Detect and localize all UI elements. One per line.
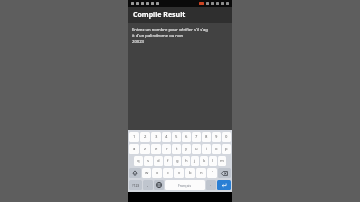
button[interactable]: p <box>222 144 231 154</box>
staticText: c <box>167 170 170 176</box>
staticText: 6 <box>185 134 188 140</box>
button[interactable]: t <box>172 144 181 154</box>
staticText: q <box>137 158 140 164</box>
staticText: o <box>215 146 218 152</box>
button[interactable]: e <box>151 144 161 154</box>
button[interactable]: 6 <box>182 132 191 142</box>
button[interactable]: Enter <box>217 180 231 190</box>
staticText: g <box>176 158 179 164</box>
button[interactable]: a <box>129 144 139 154</box>
staticText: s <box>147 158 150 164</box>
staticText: 0 <box>225 134 228 140</box>
staticText: h <box>185 158 188 164</box>
staticText: 8 <box>205 134 208 140</box>
button[interactable]: Shift <box>129 168 141 178</box>
button[interactable]: ' <box>207 168 217 178</box>
staticText: u <box>195 146 198 152</box>
staticText: Français <box>178 183 192 188</box>
staticText: x <box>156 170 159 176</box>
staticText: 4 <box>165 134 168 140</box>
button[interactable]: d <box>154 156 163 166</box>
staticText: t <box>176 146 178 152</box>
button[interactable]: Change keyboard <box>154 180 164 190</box>
button[interactable]: 1 <box>129 132 139 142</box>
button[interactable]: Backspace <box>218 168 231 178</box>
button[interactable]: 4 <box>162 132 171 142</box>
staticText: m <box>220 158 224 164</box>
staticText: , <box>147 182 149 188</box>
button[interactable]: z <box>140 144 150 154</box>
staticText: a <box>133 146 136 152</box>
button[interactable]: o <box>212 144 221 154</box>
staticText: . <box>210 182 212 188</box>
button[interactable]: w <box>142 168 151 178</box>
button[interactable]: Compile Result <box>128 7 232 23</box>
button[interactable]: h <box>182 156 190 166</box>
button[interactable]: j <box>191 156 199 166</box>
staticText: n <box>200 170 203 176</box>
button[interactable]: 5 <box>172 132 181 142</box>
staticText: it d'un palindrome ou non <box>132 33 184 39</box>
staticText: z <box>144 146 146 152</box>
button[interactable]: , <box>143 180 153 190</box>
staticText: 9 <box>215 134 218 140</box>
button[interactable]: 8 <box>202 132 211 142</box>
button[interactable]: 9 <box>212 132 221 142</box>
button[interactable]: n <box>196 168 206 178</box>
staticText: b <box>189 170 192 176</box>
button[interactable]: 2 <box>140 132 150 142</box>
button[interactable]: y <box>182 144 191 154</box>
button[interactable]: s <box>144 156 153 166</box>
button[interactable]: ?123 <box>129 180 142 190</box>
button[interactable]: g <box>173 156 181 166</box>
button[interactable]: u <box>192 144 201 154</box>
staticText: Entrez un nombre pour vérifier s'il s'ag <box>132 27 208 33</box>
staticText: j <box>194 158 196 164</box>
button[interactable]: Français <box>165 180 205 190</box>
button[interactable]: 7 <box>192 132 201 142</box>
button[interactable]: 3 <box>151 132 161 142</box>
staticText: l <box>212 158 214 164</box>
staticText: 7 <box>195 134 198 140</box>
button[interactable]: r <box>162 144 171 154</box>
staticText: r <box>166 146 168 152</box>
button[interactable]: b <box>185 168 195 178</box>
staticText: 5 <box>175 134 178 140</box>
staticText: e <box>155 146 158 152</box>
button[interactable]: c <box>163 168 173 178</box>
staticText: ' <box>212 170 213 176</box>
button[interactable]: x <box>152 168 162 178</box>
staticText: y <box>185 146 188 152</box>
button[interactable]: k <box>200 156 208 166</box>
staticText: f <box>167 158 169 164</box>
staticText: d <box>157 158 160 164</box>
staticText: 1 <box>133 134 136 140</box>
staticText: Compile Result <box>133 10 186 20</box>
button[interactable]: l <box>209 156 217 166</box>
button[interactable]: v <box>174 168 184 178</box>
staticText: 2 <box>144 134 147 140</box>
staticText: v <box>178 170 181 176</box>
staticText: w <box>145 170 149 176</box>
staticText: 3 <box>155 134 158 140</box>
staticText: i <box>206 146 208 152</box>
button[interactable]: q <box>134 156 143 166</box>
button[interactable]: f <box>164 156 172 166</box>
staticText: p <box>225 146 228 152</box>
button[interactable]: m <box>218 156 226 166</box>
button[interactable]: i <box>202 144 211 154</box>
staticText: 20023 <box>132 39 144 45</box>
staticText: k <box>203 158 206 164</box>
button[interactable]: 0 <box>222 132 231 142</box>
staticText: ?123 <box>132 183 140 188</box>
